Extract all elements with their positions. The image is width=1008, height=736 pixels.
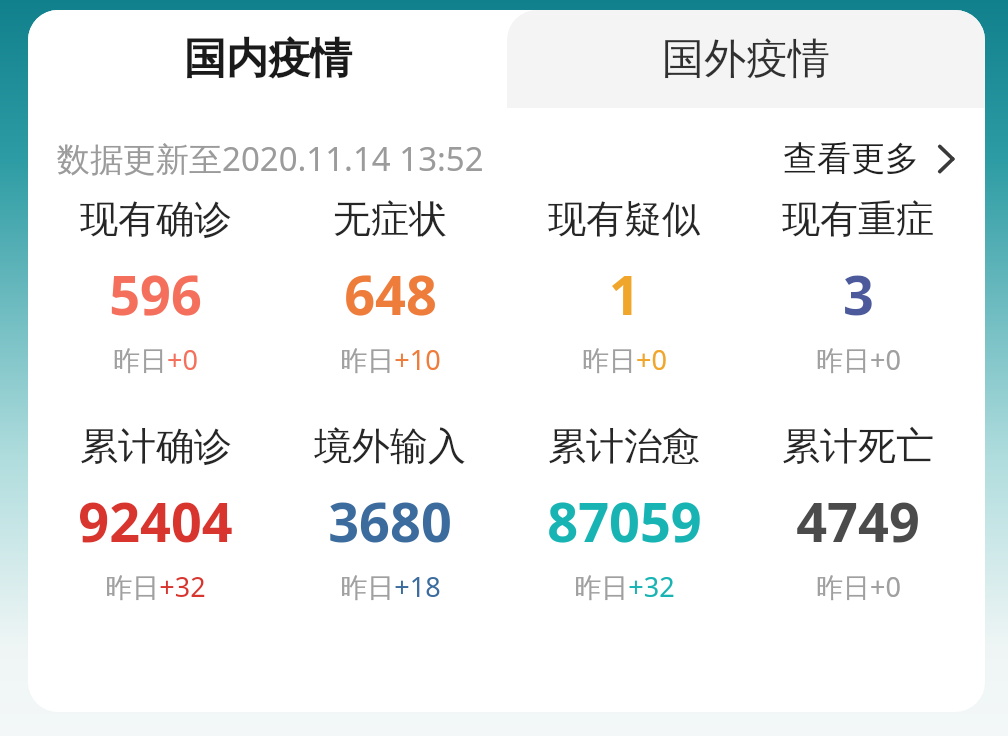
staticText: 昨日+0 [582, 341, 667, 378]
staticText: 1 [609, 257, 640, 331]
staticText: 累计确诊 [80, 422, 232, 470]
button[interactable]: 累计死亡 [741, 422, 975, 605]
staticText: 累计治愈 [548, 422, 700, 470]
staticText: 查看更多 [783, 137, 919, 180]
other: View more [937, 144, 955, 174]
staticText: 累计死亡 [782, 422, 934, 470]
staticText: 4749 [796, 484, 920, 558]
staticText: 现有疑似 [548, 195, 700, 243]
staticText: 国外疫情 [662, 33, 830, 86]
staticText: 国内疫情 [184, 33, 352, 86]
button[interactable]: 查看更多 [783, 137, 955, 180]
button[interactable]: 国内疫情 [28, 10, 507, 108]
staticText: 昨日+0 [816, 341, 901, 378]
staticText: 数据更新至2020.11.14 13:52 [57, 136, 484, 181]
button[interactable]: 境外输入 [273, 422, 507, 605]
button[interactable]: 现有疑似 [507, 195, 741, 378]
staticText: 无症状 [333, 195, 447, 243]
staticText: 现有重症 [782, 195, 934, 243]
staticText: 境外输入 [314, 422, 466, 470]
staticText: 昨日+32 [574, 568, 675, 605]
staticText: 昨日+18 [340, 568, 441, 605]
staticText: 昨日+32 [105, 568, 206, 605]
staticText: 3 [843, 257, 874, 331]
button[interactable]: 国外疫情 [507, 10, 985, 108]
staticText: 87059 [547, 484, 702, 558]
button[interactable]: 累计确诊 [38, 422, 273, 605]
button[interactable]: 现有重症 [741, 195, 975, 378]
staticText: 3680 [328, 484, 452, 558]
staticText: 昨日+10 [340, 341, 441, 378]
staticText: 昨日+0 [113, 341, 198, 378]
staticText: 596 [109, 257, 202, 331]
staticText: 现有确诊 [80, 195, 232, 243]
button[interactable]: 累计治愈 [507, 422, 741, 605]
staticText: 92404 [78, 484, 233, 558]
button[interactable]: 现有确诊 [38, 195, 273, 378]
staticText: 昨日+0 [816, 568, 901, 605]
button[interactable]: 无症状 [273, 195, 507, 378]
staticText: 648 [344, 257, 437, 331]
